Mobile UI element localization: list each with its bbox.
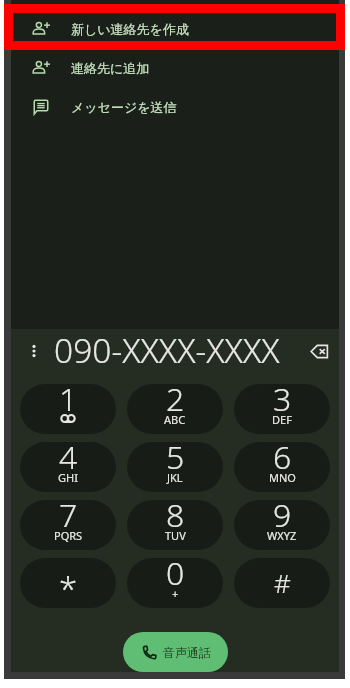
staticText: 090-XXXX-XXXX <box>54 327 280 373</box>
staticText: 連絡先に追加 <box>71 60 150 76</box>
staticText: 4 <box>59 442 78 479</box>
staticText: 1 <box>59 384 78 421</box>
button[interactable]: 1 <box>20 384 116 434</box>
staticText: * <box>59 566 78 608</box>
button[interactable]: 3 <box>234 384 330 434</box>
staticText: 7 <box>59 500 78 537</box>
staticText: PQRS <box>54 528 83 543</box>
button[interactable]: 7 <box>20 500 116 550</box>
staticText: 6 <box>273 442 292 479</box>
button[interactable]: Backspace <box>304 336 334 366</box>
staticText: GHI <box>58 470 78 485</box>
staticText: ABC <box>164 412 186 427</box>
button[interactable]: 新しい連絡先を作成 <box>11 9 339 48</box>
staticText: 新しい連絡先を作成 <box>71 21 189 37</box>
staticText: TUV <box>165 528 186 543</box>
button[interactable]: 9 <box>234 500 330 550</box>
button[interactable]: 4 <box>20 442 116 492</box>
button[interactable]: 0 <box>127 558 223 608</box>
button[interactable]: メッセージを送信 <box>11 87 339 126</box>
staticText: メッセージを送信 <box>71 99 177 115</box>
button[interactable]: 8 <box>127 500 223 550</box>
staticText: + <box>172 586 179 601</box>
button[interactable]: * <box>20 558 116 608</box>
staticText: 3 <box>273 384 292 421</box>
staticText: MNO <box>269 470 296 485</box>
staticText: # <box>274 565 291 600</box>
button[interactable]: 連絡先に追加 <box>11 48 339 87</box>
staticText: JKL <box>167 470 183 485</box>
button[interactable]: 6 <box>234 442 330 492</box>
staticText: 8 <box>166 500 185 537</box>
staticText: DEF <box>272 412 292 427</box>
staticText: 音声通話 <box>163 645 211 660</box>
button[interactable]: 5 <box>127 442 223 492</box>
button[interactable]: 2 <box>127 384 223 434</box>
button[interactable]: More options <box>20 337 48 365</box>
staticText: 5 <box>166 442 185 479</box>
button[interactable]: 音声通話 <box>123 632 228 672</box>
button[interactable]: # <box>234 558 330 608</box>
staticText: 0 <box>166 558 185 595</box>
staticText: 2 <box>166 384 185 421</box>
staticText: 9 <box>273 500 292 537</box>
staticText: WXYZ <box>267 528 297 543</box>
